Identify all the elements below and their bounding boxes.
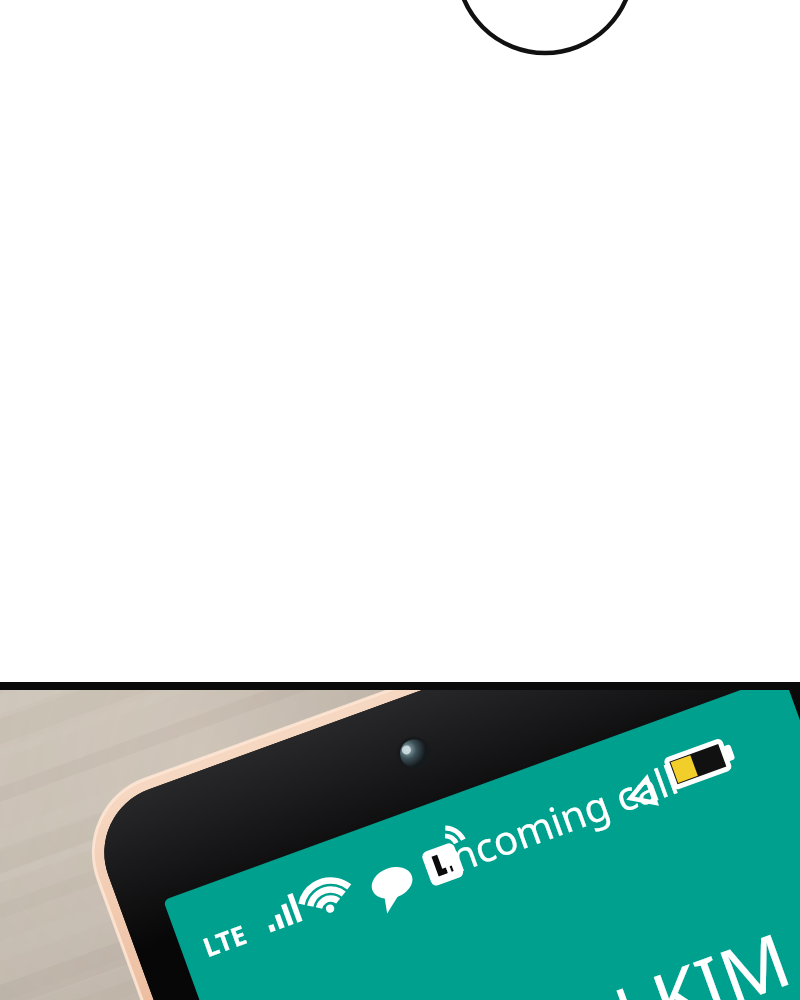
button[interactable]: Comic panel: incoming call on phone [0, 0, 800, 1000]
